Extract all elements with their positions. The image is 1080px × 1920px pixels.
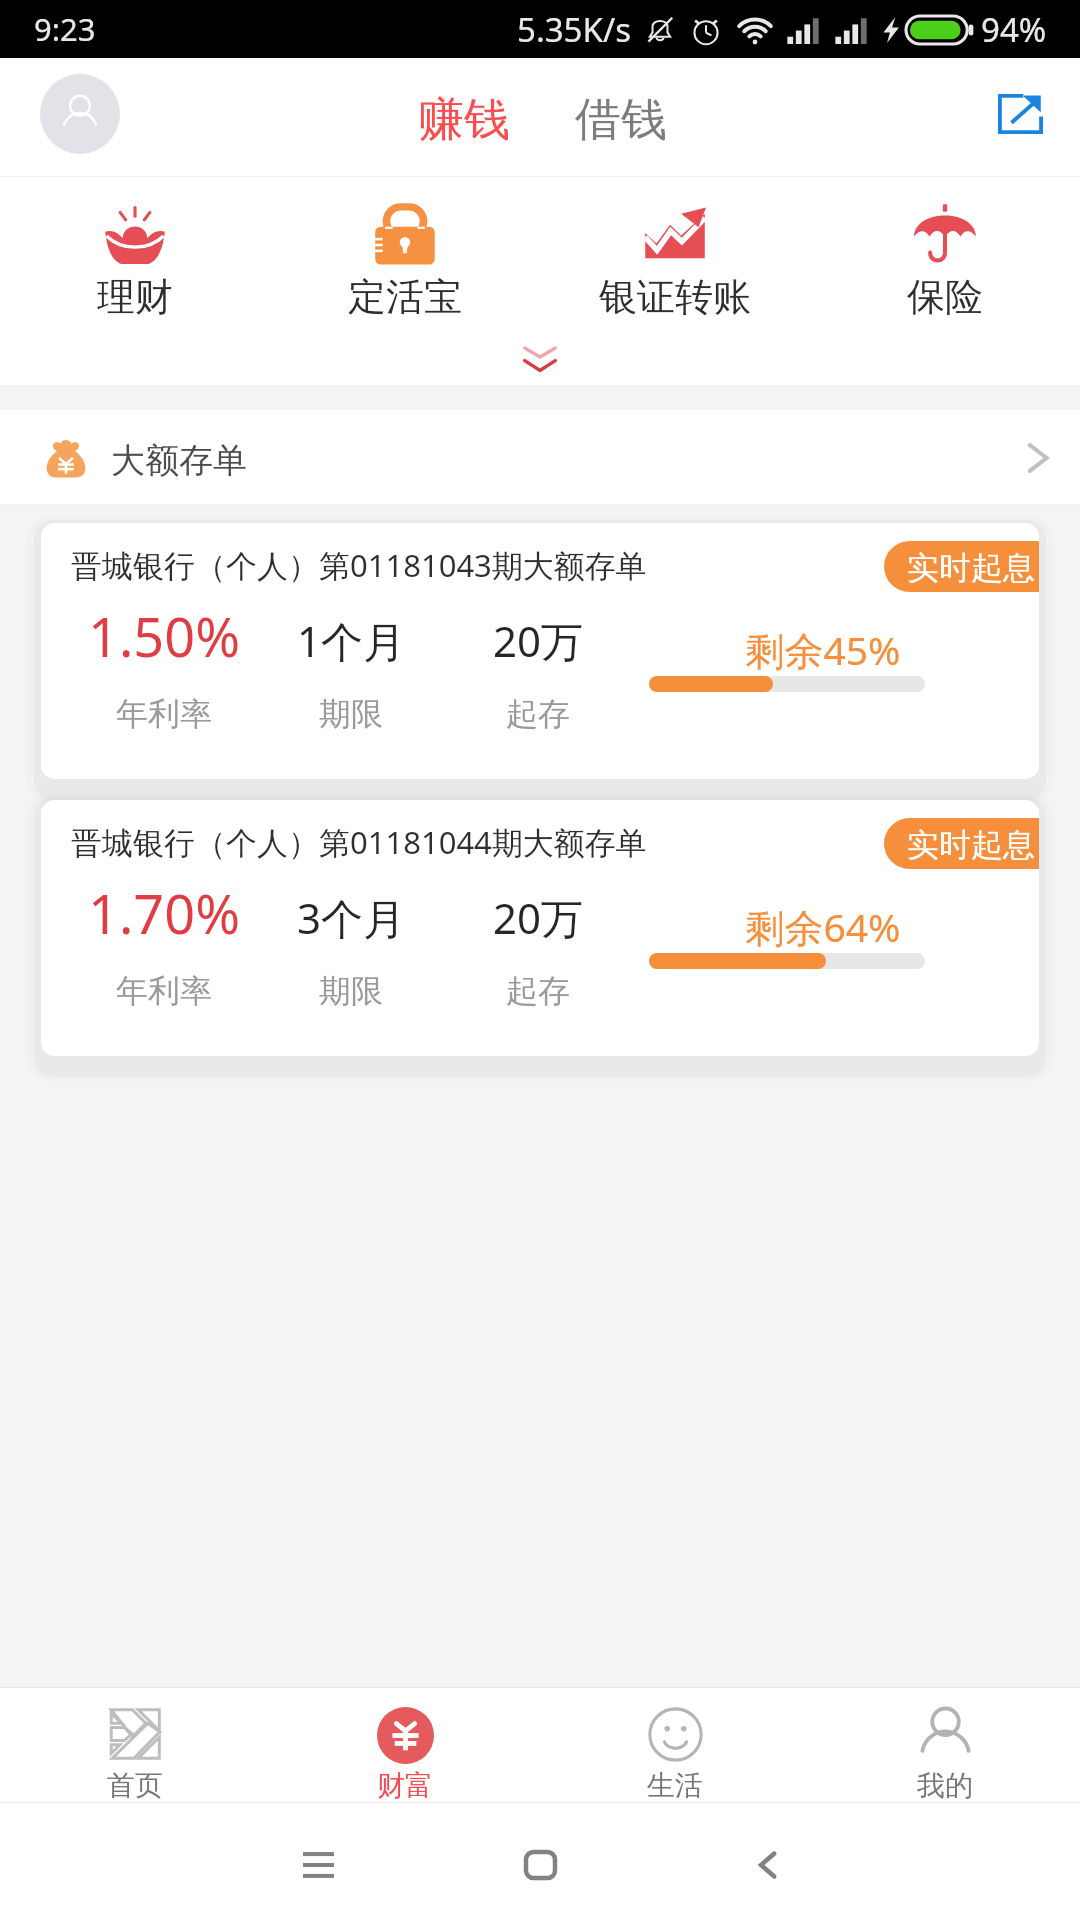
staticText: 实时起息 — [907, 548, 1035, 588]
staticText: 20万 — [328, 889, 748, 946]
staticText: 起存 — [328, 971, 748, 1011]
staticText: 期限 — [141, 694, 561, 734]
button[interactable]: 晋城银行（个人）第01181044期大额存单 — [41, 800, 1039, 1056]
button[interactable]: 银证转账 — [540, 177, 810, 385]
staticText: 5.35K/s — [517, 7, 631, 52]
button[interactable]: Profile — [40, 74, 120, 154]
button[interactable]: Home — [490, 1815, 590, 1915]
staticText: 财富 — [377, 1768, 433, 1803]
button[interactable]: 保险 — [810, 177, 1080, 385]
staticText: 1个月 — [141, 612, 561, 669]
button[interactable]: 借钱 — [568, 91, 674, 149]
staticText: 94% — [981, 7, 1047, 52]
button[interactable]: Show more — [495, 336, 585, 382]
button[interactable]: Back — [717, 1815, 817, 1915]
button[interactable]: Recent apps — [268, 1815, 368, 1915]
staticText: 借钱 — [575, 91, 667, 149]
staticText: 年利率 — [41, 694, 374, 734]
staticText: 实时起息 — [907, 825, 1035, 865]
staticText: 剩余64% — [613, 900, 1033, 953]
button[interactable]: 定活宝 — [270, 177, 540, 385]
staticText: 我的 — [917, 1768, 973, 1803]
staticText: 9:23 — [34, 8, 96, 50]
button[interactable]: 首页 — [0, 1688, 270, 1802]
button[interactable]: 生活 — [540, 1688, 810, 1802]
staticText: 生活 — [647, 1768, 703, 1803]
staticText: 剩余45% — [613, 623, 1033, 676]
button[interactable]: 大额存单 — [0, 410, 1080, 505]
staticText: 1.70% — [41, 876, 374, 950]
staticText: 1.50% — [41, 599, 374, 673]
staticText: 期限 — [141, 971, 561, 1011]
staticText: 赚钱 — [418, 91, 510, 149]
staticText: 首页 — [107, 1768, 163, 1803]
staticText: 3个月 — [141, 889, 561, 946]
button[interactable]: 财富 — [270, 1688, 540, 1802]
staticText: 保险 — [907, 273, 983, 321]
staticText: 晋城银行（个人）第01181043期大额存单 — [71, 544, 647, 586]
staticText: 起存 — [328, 694, 748, 734]
button[interactable]: 赚钱 — [411, 91, 517, 149]
button[interactable]: 理财 — [0, 177, 270, 385]
staticText: 晋城银行（个人）第01181044期大额存单 — [71, 821, 647, 863]
staticText: 年利率 — [41, 971, 374, 1011]
staticText: 大额存单 — [111, 439, 247, 482]
staticText: 理财 — [97, 273, 173, 321]
button[interactable]: Open in new window — [980, 78, 1060, 150]
button[interactable]: 我的 — [810, 1688, 1080, 1802]
staticText: 定活宝 — [348, 273, 462, 321]
staticText: 银证转账 — [599, 273, 751, 321]
staticText: 20万 — [328, 612, 748, 669]
button[interactable]: 晋城银行（个人）第01181043期大额存单 — [41, 523, 1039, 779]
